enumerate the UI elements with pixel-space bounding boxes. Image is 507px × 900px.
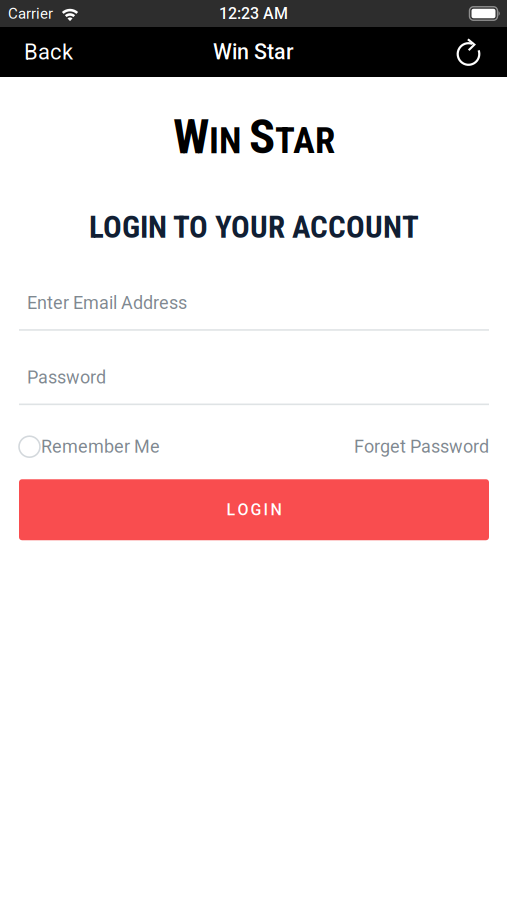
staticText: Enter Email Address <box>27 292 187 313</box>
staticText: LOGIN TO YOUR ACCOUNT <box>89 209 419 245</box>
button[interactable]: Refresh <box>445 27 507 77</box>
staticText: TAR <box>275 119 335 162</box>
button[interactable]: Remember Me <box>19 436 160 457</box>
staticText: W <box>173 108 209 165</box>
staticText: IN <box>209 119 241 162</box>
staticText: Password <box>27 367 106 388</box>
button[interactable]: L O G I N <box>19 479 489 540</box>
button[interactable]: Back <box>0 27 85 77</box>
staticText: Back <box>24 39 73 65</box>
staticText: Carrier <box>8 5 53 22</box>
staticText: 12:23 AM <box>219 4 288 23</box>
staticText: Forget Password <box>354 436 489 457</box>
button[interactable]: Forget Password <box>354 436 489 457</box>
staticText: Win Star <box>213 39 294 65</box>
staticText: Remember Me <box>41 436 160 457</box>
button[interactable]: Password <box>19 367 489 405</box>
staticText: L O G I N <box>226 500 281 519</box>
button[interactable]: Enter Email Address <box>19 292 489 331</box>
staticText: S <box>249 108 275 165</box>
